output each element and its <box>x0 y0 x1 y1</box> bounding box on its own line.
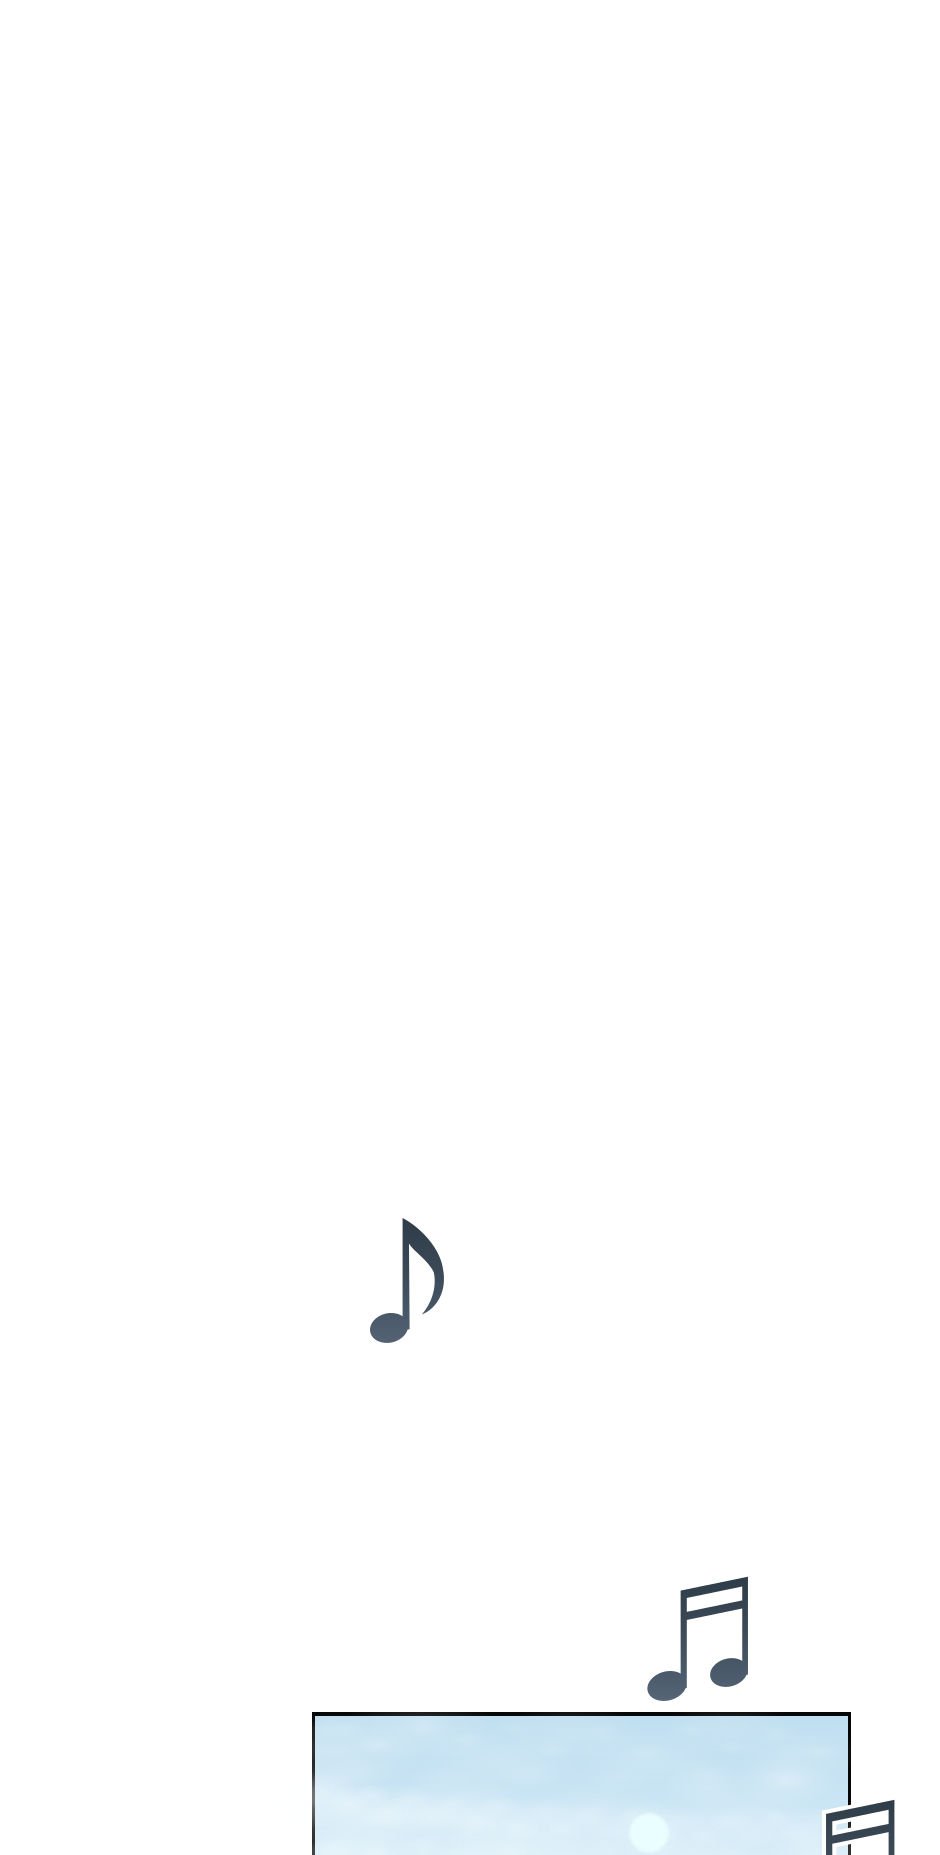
button[interactable]: Episode artwork <box>0 0 940 1855</box>
